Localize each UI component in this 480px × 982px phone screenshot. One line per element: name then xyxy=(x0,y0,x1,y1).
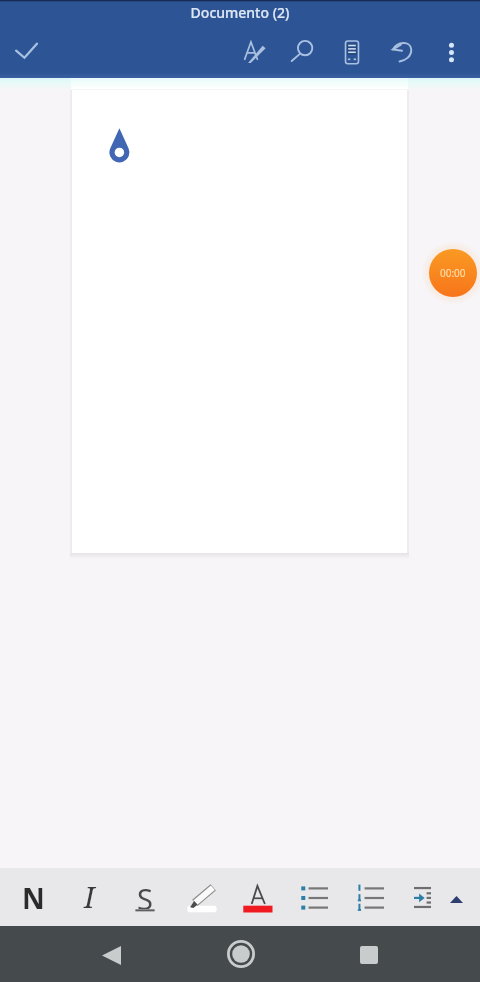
button[interactable]: Bold xyxy=(7,868,59,926)
button[interactable]: Font colour xyxy=(232,868,284,926)
staticText: S xyxy=(137,879,153,909)
button[interactable]: Bulleted list xyxy=(288,868,340,926)
button[interactable]: Highlight xyxy=(177,868,229,926)
button[interactable]: Recent apps xyxy=(345,931,393,979)
button[interactable]: Undo xyxy=(378,27,426,75)
staticText: Documento (2) xyxy=(0,3,480,22)
staticText: N xyxy=(22,879,45,917)
button[interactable]: Increase indent xyxy=(396,868,448,926)
button[interactable]: Italic xyxy=(63,868,115,926)
button[interactable]: Text formatting xyxy=(230,27,278,75)
staticText: I xyxy=(84,877,95,916)
button[interactable]: Collapse toolbar xyxy=(430,868,480,926)
button[interactable]: Done xyxy=(2,27,50,75)
button[interactable]: Reading layout xyxy=(328,28,376,76)
button[interactable]: Home xyxy=(217,930,265,978)
button[interactable]: Underline xyxy=(119,868,171,926)
staticText: 00:00 xyxy=(440,266,466,280)
button[interactable]: Search xyxy=(278,27,326,75)
button[interactable]: Recording timer xyxy=(429,249,477,297)
button[interactable]: Back xyxy=(87,931,135,979)
button[interactable]: More options xyxy=(427,28,475,76)
button[interactable]: Numbered list xyxy=(344,868,396,926)
